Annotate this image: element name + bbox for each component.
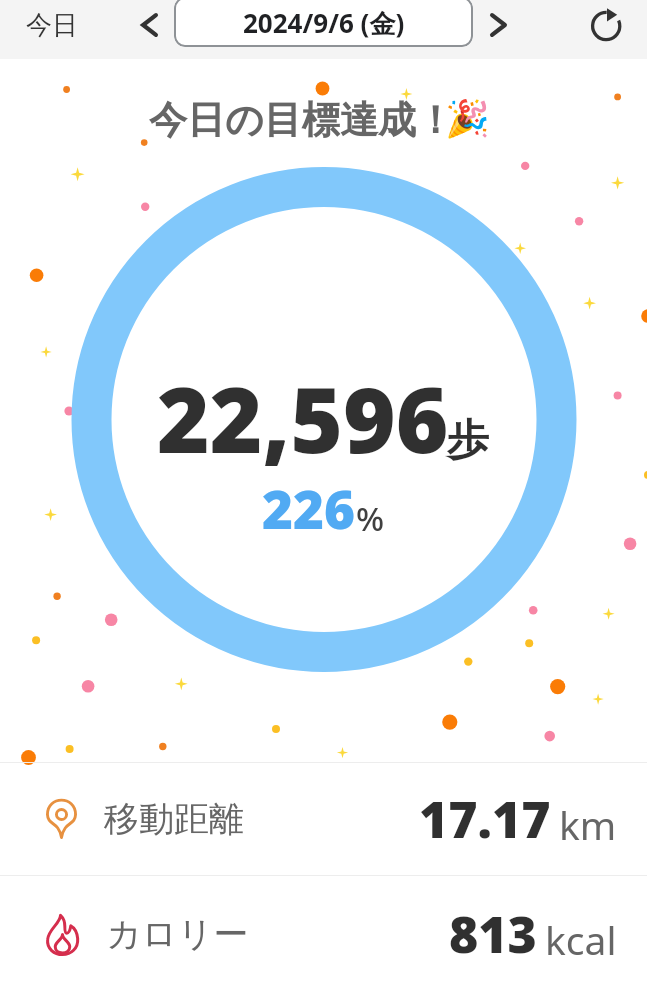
staticText: 移動距離 bbox=[104, 797, 244, 841]
staticText: 22,596 bbox=[157, 357, 449, 480]
staticText: % bbox=[356, 496, 385, 541]
staticText: 今日の目標達成！ bbox=[149, 96, 454, 144]
staticText: 813 bbox=[449, 900, 537, 968]
button[interactable]: Previous day bbox=[127, 2, 172, 47]
button[interactable]: カロリー bbox=[0, 876, 647, 1000]
staticText: 17.17 bbox=[419, 785, 551, 853]
staticText: 2024/9/6 (金) bbox=[243, 5, 405, 41]
button[interactable]: 2024/9/6 (金) bbox=[174, 0, 473, 47]
staticText: 🎉 bbox=[445, 98, 490, 140]
button[interactable]: 移動距離 bbox=[0, 763, 647, 875]
staticText: 今日 bbox=[26, 9, 78, 42]
staticText: 歩 bbox=[447, 414, 489, 467]
button[interactable]: 今日 bbox=[8, 0, 96, 54]
staticText: km bbox=[559, 798, 617, 851]
staticText: カロリー bbox=[106, 912, 249, 956]
staticText: kcal bbox=[545, 913, 617, 966]
staticText: 226 bbox=[262, 472, 356, 544]
button[interactable]: Refresh bbox=[585, 2, 631, 48]
button[interactable]: Next day bbox=[476, 2, 521, 47]
